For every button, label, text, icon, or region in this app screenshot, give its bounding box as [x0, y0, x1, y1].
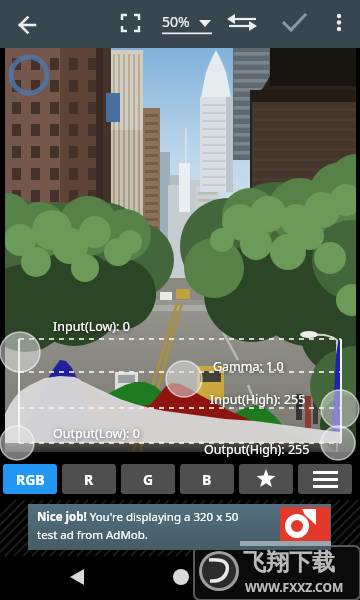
button[interactable]: 50%	[158, 6, 216, 38]
button[interactable]	[8, 8, 48, 40]
button[interactable]	[50, 558, 110, 598]
button[interactable]	[222, 8, 264, 40]
button[interactable]	[326, 8, 354, 40]
staticText: Nice job! You're displaying a 320 x 50 t…	[37, 509, 239, 542]
button[interactable]: RGB	[3, 464, 57, 494]
staticText: WWW.FXXZ.COM	[245, 579, 344, 595]
button[interactable]: G	[121, 464, 175, 494]
staticText: G	[143, 470, 154, 489]
staticText: 飞翔下载	[243, 548, 335, 577]
staticText: Input(High): 255	[210, 391, 306, 408]
staticText: RGB	[16, 470, 45, 489]
staticText: B	[202, 470, 212, 489]
button[interactable]: B	[180, 464, 234, 494]
staticText: 50%	[162, 12, 190, 31]
button[interactable]	[298, 464, 352, 494]
staticText: Output(High): 255	[204, 441, 310, 458]
staticText: R	[84, 470, 94, 489]
staticText: Output(Low): 0	[53, 425, 140, 442]
button[interactable]	[278, 8, 314, 40]
button[interactable]	[155, 558, 215, 598]
staticText: Gamma: 1.0	[213, 358, 284, 375]
staticText: Input(Low): 0	[53, 318, 130, 335]
button[interactable]	[239, 464, 293, 494]
button[interactable]: Nice job! You're displaying a 320 x 50 t…	[28, 504, 331, 550]
button[interactable]	[114, 8, 148, 40]
button[interactable]: R	[62, 464, 116, 494]
